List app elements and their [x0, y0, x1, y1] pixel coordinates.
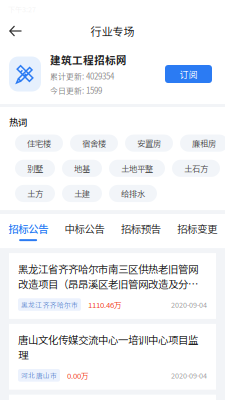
staticText: 中标公告: [64, 221, 104, 236]
staticText: 今日更新: 1599: [50, 85, 102, 96]
button[interactable]: 唐山文化传媒交流中心一培训中心项目监理: [0, 324, 225, 390]
staticText: 给排水: [121, 187, 145, 199]
button[interactable]: 安置房: [125, 135, 173, 152]
staticText: 2020-09-04: [171, 370, 207, 380]
staticText: 0.00万: [67, 370, 89, 381]
staticText: 土石方: [184, 162, 208, 174]
button[interactable]: 招标公告: [0, 214, 56, 248]
staticText: 安置房: [137, 137, 161, 149]
staticText: 地基: [74, 162, 90, 174]
button[interactable]: 招标预告: [112, 214, 169, 248]
button[interactable]: 招标变更: [169, 214, 225, 248]
staticText: 唐山文化传媒交流中心一培训中心项目监理: [18, 332, 198, 362]
staticText: 1110.46万: [88, 299, 122, 310]
button[interactable]: 廉租房: [180, 135, 225, 152]
staticText: 建筑工程招标网: [50, 52, 127, 67]
staticText: 招标公告: [8, 221, 48, 236]
button[interactable]: 土石方: [172, 160, 220, 177]
staticText: 土方: [27, 187, 43, 199]
staticText: 订阅: [179, 67, 197, 81]
button[interactable]: 订阅: [165, 65, 212, 83]
button[interactable]: 宿舍楼: [70, 135, 118, 152]
button[interactable]: 地基: [62, 160, 102, 177]
button[interactable]: 给排水: [109, 185, 157, 202]
button[interactable]: 别墅: [15, 160, 55, 177]
staticText: 行业专场: [90, 23, 134, 39]
button[interactable]: 住宅楼: [15, 135, 63, 152]
staticText: 招标预告: [121, 221, 161, 236]
staticText: 黑龙江 齐齐哈尔市: [21, 300, 78, 309]
staticText: 黑龙江省齐齐哈尔市南三区供热老旧管网改造项目（昂昂溪区老旧管网改造及分户工程）三…: [18, 261, 207, 291]
staticText: 宿舍楼: [82, 137, 106, 149]
button[interactable]: 土建: [62, 185, 102, 202]
staticText: 住宅楼: [27, 137, 51, 149]
button[interactable]: 黑龙江省齐齐哈尔市南三区供热老旧管网改造项目（昂昂溪区老旧管网改造及分户工程）三…: [0, 253, 225, 319]
button[interactable]: 承德高新区东七路工程: [0, 395, 225, 400]
staticText: 2020-09-04: [171, 299, 207, 310]
staticText: 廉租房: [192, 137, 216, 149]
staticText: 累计更新: 4029354: [50, 70, 114, 82]
button[interactable]: 中标公告: [56, 214, 112, 248]
staticText: 热词: [9, 115, 27, 128]
staticText: 河北 唐山市: [21, 370, 57, 380]
staticText: 招标变更: [177, 221, 217, 236]
staticText: 土地平整: [121, 162, 153, 174]
button[interactable]: 土地平整: [109, 160, 165, 177]
button[interactable]: Back: [0, 18, 31, 43]
staticText: 别墅: [27, 162, 43, 174]
staticText: 土建: [74, 187, 90, 199]
button[interactable]: 土方: [15, 185, 55, 202]
